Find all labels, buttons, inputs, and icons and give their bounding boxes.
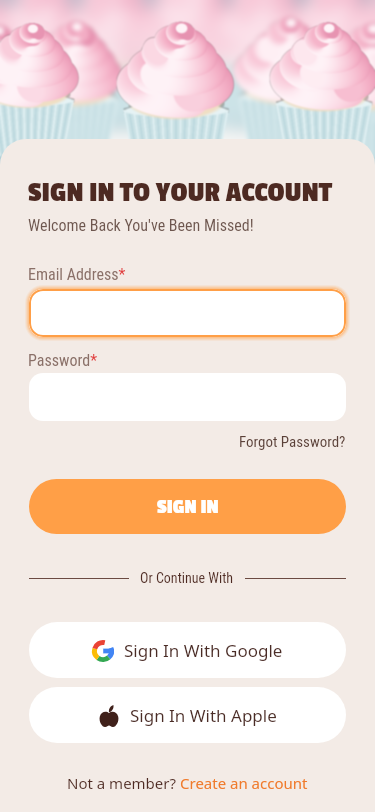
staticText: Password* bbox=[28, 351, 98, 370]
staticText: Welcome Back You've Been Missed! bbox=[28, 216, 254, 235]
staticText: SIGN IN bbox=[157, 496, 219, 518]
staticText: Or Continue With bbox=[140, 570, 234, 586]
staticText: Sign In With Google bbox=[124, 639, 283, 662]
staticText: Email Address* bbox=[28, 265, 126, 284]
button[interactable]: Not a member? bbox=[67, 773, 308, 793]
button[interactable]: Forgot Password? bbox=[239, 433, 346, 451]
staticText: Not a member? bbox=[67, 773, 180, 793]
staticText: Create an account bbox=[180, 773, 308, 793]
staticText: Sign In With Apple bbox=[130, 704, 277, 727]
staticText: SIGN IN TO YOUR ACCOUNT bbox=[28, 178, 333, 209]
button[interactable]: SIGN IN bbox=[29, 479, 346, 534]
button[interactable]: Sign In With Apple bbox=[29, 687, 346, 743]
button[interactable] bbox=[29, 289, 346, 337]
button[interactable]: Sign In With Google bbox=[29, 622, 346, 678]
